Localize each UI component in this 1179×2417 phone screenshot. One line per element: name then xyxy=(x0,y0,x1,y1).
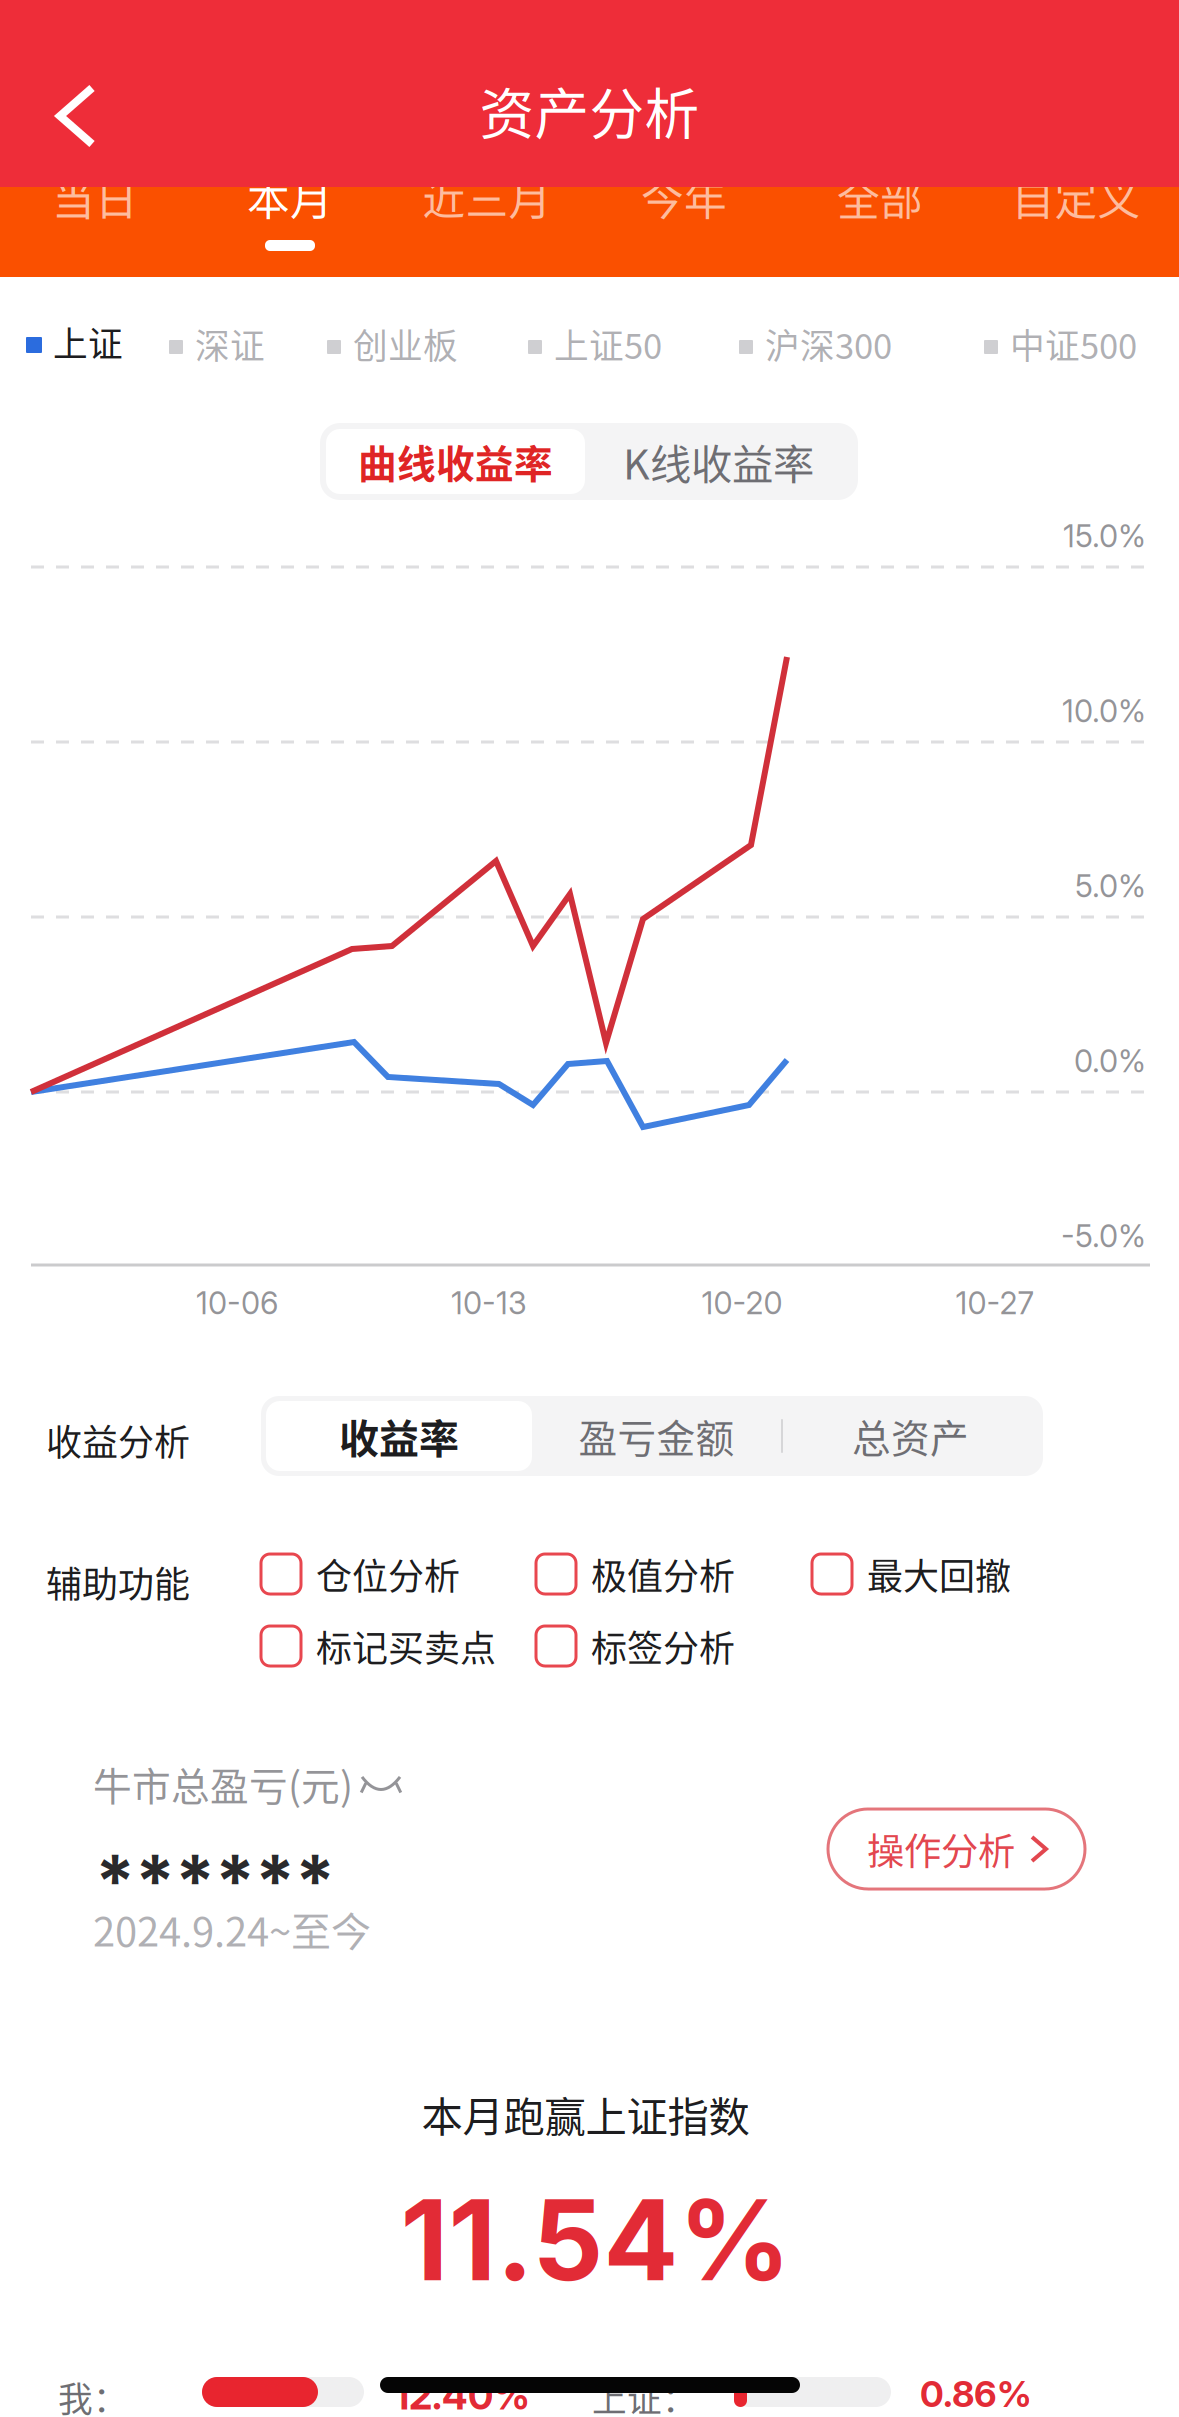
staticText: 10.0% xyxy=(1062,692,1146,729)
button[interactable]: 上证50 xyxy=(528,322,662,366)
staticText: 5.0% xyxy=(1075,867,1146,904)
button[interactable]: 本月 xyxy=(192,177,388,279)
staticText: 我： xyxy=(58,2372,128,2417)
button[interactable]: 自定义 xyxy=(978,177,1174,279)
button[interactable]: 曲线收益率 xyxy=(326,429,585,494)
staticText: 操作分析 xyxy=(867,1822,1015,1876)
staticText: 全部 xyxy=(837,166,923,228)
staticText: 沪深300 xyxy=(765,319,892,369)
staticText: 牛市总盈亏(元) xyxy=(93,1756,353,1812)
staticText: 上证50 xyxy=(554,319,662,369)
button[interactable]: 操作分析 xyxy=(828,1809,1085,1889)
button[interactable]: 中证500 xyxy=(984,322,1137,366)
button[interactable]: 仓位分析 xyxy=(261,1553,460,1595)
staticText: 本月 xyxy=(247,166,333,228)
button[interactable]: 收益率 xyxy=(266,1401,532,1471)
staticText: 10-06 xyxy=(196,1284,278,1321)
staticText: 0.86% xyxy=(920,2372,1032,2416)
button[interactable]: 标记买卖点 xyxy=(261,1625,496,1667)
staticText: 今年 xyxy=(641,166,727,228)
button[interactable]: 创业板 xyxy=(327,322,458,366)
button[interactable]: 上证 xyxy=(26,320,123,364)
staticText: 盈亏金额 xyxy=(578,1408,734,1464)
staticText: 0.0% xyxy=(1074,1042,1146,1079)
staticText: 辅助功能 xyxy=(46,1556,190,1608)
staticText: 曲线收益率 xyxy=(358,433,553,489)
staticText: 当日 xyxy=(52,166,138,228)
button[interactable]: K线收益率 xyxy=(585,429,852,494)
staticText: 11.54% xyxy=(400,2173,790,2307)
staticText: 10-27 xyxy=(955,1284,1034,1321)
staticText: 15.0% xyxy=(1063,517,1146,554)
staticText: 收益分析 xyxy=(46,1414,190,1466)
staticText: -5.0% xyxy=(1061,1217,1146,1254)
button[interactable]: 今年 xyxy=(586,177,782,279)
staticText: 2024.9.24~至今 xyxy=(93,1900,371,1958)
staticText: 中证500 xyxy=(1010,319,1137,369)
button[interactable]: 总资产 xyxy=(783,1401,1038,1471)
button[interactable]: 全部 xyxy=(782,177,978,279)
staticText: 本月跑赢上证指数 xyxy=(421,2084,749,2144)
staticText: 创业板 xyxy=(353,319,458,369)
staticText: 12.40% xyxy=(394,2372,530,2417)
staticText: 仓位分析 xyxy=(316,1548,460,1600)
staticText: 上证 xyxy=(53,317,123,367)
button[interactable]: 当日 xyxy=(0,177,193,279)
button[interactable]: 返回 xyxy=(16,50,136,182)
staticText: 最大回撤 xyxy=(867,1548,1011,1600)
staticText: ****** xyxy=(95,1837,335,1924)
staticText: 极值分析 xyxy=(591,1548,735,1600)
staticText: 总资产 xyxy=(852,1408,969,1464)
staticText: 10-13 xyxy=(451,1284,527,1321)
button[interactable]: 标签分析 xyxy=(536,1625,735,1667)
staticText: 收益率 xyxy=(339,1407,459,1465)
staticText: 标签分析 xyxy=(591,1620,735,1672)
button[interactable]: 极值分析 xyxy=(536,1553,735,1595)
staticText: 资产分析 xyxy=(479,70,699,150)
button[interactable]: 盈亏金额 xyxy=(532,1401,781,1471)
button[interactable]: 深证 xyxy=(169,322,265,366)
button[interactable]: 沪深300 xyxy=(739,322,892,366)
button[interactable]: 近三月 xyxy=(389,177,585,279)
staticText: 自定义 xyxy=(1011,166,1140,228)
staticText: 标记买卖点 xyxy=(316,1620,496,1672)
button[interactable]: 最大回撤 xyxy=(812,1553,1011,1595)
staticText: 深证 xyxy=(195,319,265,369)
staticText: 近三月 xyxy=(422,166,551,228)
staticText: 10-20 xyxy=(701,1284,782,1321)
staticText: K线收益率 xyxy=(623,432,814,491)
staticText: 上证： xyxy=(592,2372,697,2417)
